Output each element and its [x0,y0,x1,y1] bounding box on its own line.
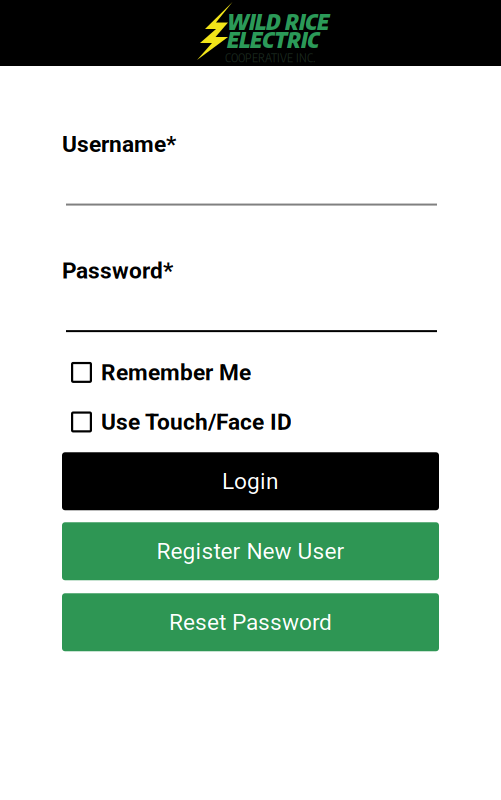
button[interactable]: Use Touch/Face ID [0,409,501,435]
staticText: WILD RICE [226,8,328,35]
button[interactable]: Reset Password [62,593,439,651]
staticText: ELECTRIC [226,26,318,53]
button[interactable]: Remember Me [0,359,501,386]
staticText: Login [222,468,279,495]
staticText: Register New User [156,538,344,565]
button[interactable]: Username* [0,131,501,206]
staticText: Remember Me [101,359,251,386]
button[interactable]: Password* [0,258,501,332]
staticText: Username* [62,131,176,158]
staticText: Reset Password [169,609,332,636]
button[interactable]: Register New User [62,522,439,580]
button[interactable]: Login [62,452,439,510]
staticText: Password* [62,258,173,284]
staticText: Use Touch/Face ID [101,409,292,435]
staticText: COOPERATIVE INC. [225,50,315,65]
